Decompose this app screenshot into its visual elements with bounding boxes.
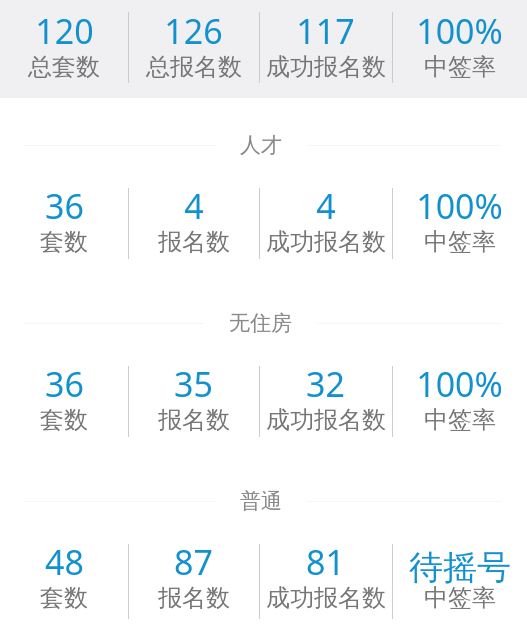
- staticText: 中签率: [424, 227, 496, 257]
- staticText: 成功报名数: [266, 583, 386, 613]
- staticText: 套数: [40, 405, 88, 435]
- staticText: 中签率: [424, 52, 496, 82]
- staticText: 中签率: [424, 405, 496, 435]
- staticText: 成功报名数: [266, 405, 386, 435]
- staticText: 35: [174, 361, 213, 407]
- button[interactable]: 120: [0, 0, 128, 98]
- button[interactable]: 4: [128, 98, 259, 276]
- button[interactable]: 48: [0, 454, 128, 626]
- staticText: 120: [35, 8, 94, 54]
- button[interactable]: 100%: [392, 276, 527, 454]
- button[interactable]: 87: [128, 454, 259, 626]
- button[interactable]: 32: [259, 276, 392, 454]
- button[interactable]: 100%: [392, 98, 527, 276]
- staticText: 48: [45, 539, 84, 585]
- staticText: 报名数: [158, 227, 230, 257]
- staticText: 无住房: [229, 310, 292, 336]
- staticText: 87: [174, 539, 213, 585]
- staticText: 100%: [416, 8, 503, 54]
- staticText: 4: [316, 183, 336, 229]
- staticText: 报名数: [158, 583, 230, 613]
- staticText: 套数: [40, 583, 88, 613]
- staticText: 126: [164, 8, 223, 54]
- staticText: 81: [306, 539, 345, 585]
- staticText: 32: [306, 361, 345, 407]
- staticText: 人才: [240, 132, 282, 158]
- staticText: 成功报名数: [266, 52, 386, 82]
- staticText: 待摇号: [409, 546, 511, 589]
- button[interactable]: 117: [259, 0, 392, 98]
- button[interactable]: 4: [259, 98, 392, 276]
- staticText: 100%: [416, 361, 503, 407]
- button[interactable]: 81: [259, 454, 392, 626]
- staticText: 117: [296, 8, 355, 54]
- button[interactable]: 36: [0, 276, 128, 454]
- staticText: 普通: [240, 488, 282, 514]
- staticText: 总报名数: [146, 52, 242, 82]
- button[interactable]: 126: [128, 0, 259, 98]
- button[interactable]: 待摇号: [392, 454, 527, 626]
- staticText: 100%: [416, 183, 503, 229]
- staticText: 中签率: [424, 583, 496, 613]
- button[interactable]: 100%: [392, 0, 527, 98]
- staticText: 36: [45, 183, 84, 229]
- staticText: 成功报名数: [266, 227, 386, 257]
- staticText: 套数: [40, 227, 88, 257]
- button[interactable]: 36: [0, 98, 128, 276]
- staticText: 4: [184, 183, 204, 229]
- button[interactable]: 35: [128, 276, 259, 454]
- staticText: 总套数: [28, 52, 100, 82]
- staticText: 报名数: [158, 405, 230, 435]
- staticText: 36: [45, 361, 84, 407]
